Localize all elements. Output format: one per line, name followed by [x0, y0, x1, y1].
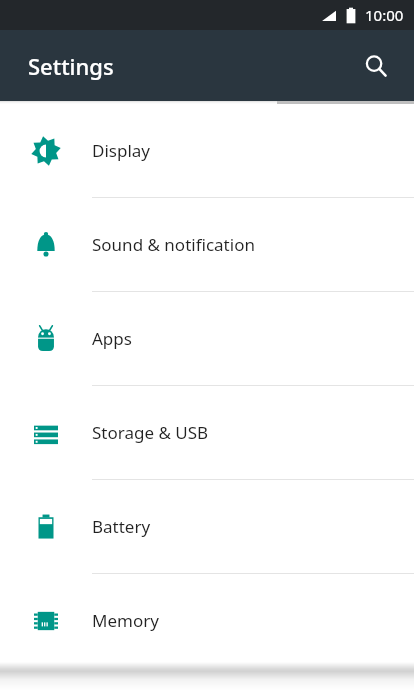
button[interactable]: Apps	[0, 292, 414, 386]
button[interactable]: Memory	[0, 574, 414, 668]
staticText: Memory	[92, 609, 159, 632]
button[interactable]: Sound & notification	[0, 198, 414, 292]
button[interactable]: Storage & USB	[0, 386, 414, 480]
staticText: Sound & notification	[92, 233, 255, 256]
button[interactable]: Display	[0, 104, 414, 198]
staticText: Settings	[28, 51, 114, 81]
staticText: Battery	[92, 515, 151, 538]
staticText: Storage & USB	[92, 421, 209, 444]
staticText: Display	[92, 139, 150, 162]
staticText: 10:00	[365, 5, 404, 25]
button[interactable]: Battery	[0, 480, 414, 574]
button[interactable]: Search	[352, 42, 400, 90]
staticText: Apps	[92, 327, 132, 350]
